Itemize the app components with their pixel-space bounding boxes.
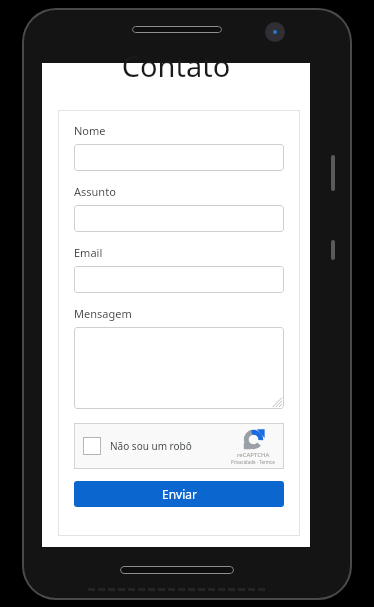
button[interactable]: Não sou um robô checkbox bbox=[74, 423, 284, 469]
button[interactable]: Enviar bbox=[74, 481, 284, 507]
button[interactable] bbox=[74, 144, 284, 171]
staticText: Email bbox=[74, 245, 103, 260]
staticText: Não sou um robô bbox=[110, 439, 192, 453]
staticText: Enviar bbox=[162, 486, 197, 502]
staticText: Mensagem bbox=[74, 306, 132, 321]
button[interactable] bbox=[74, 266, 284, 293]
staticText: Contato bbox=[42, 46, 310, 85]
button[interactable] bbox=[74, 205, 284, 232]
staticText: reCAPTCHA bbox=[237, 451, 270, 459]
staticText: Privacidade - Termos bbox=[231, 459, 275, 465]
staticText: Assunto bbox=[74, 184, 116, 199]
button[interactable] bbox=[74, 327, 284, 409]
staticText: Nome bbox=[74, 123, 106, 138]
button[interactable]: Não sou um robô checkbox bbox=[83, 437, 101, 455]
